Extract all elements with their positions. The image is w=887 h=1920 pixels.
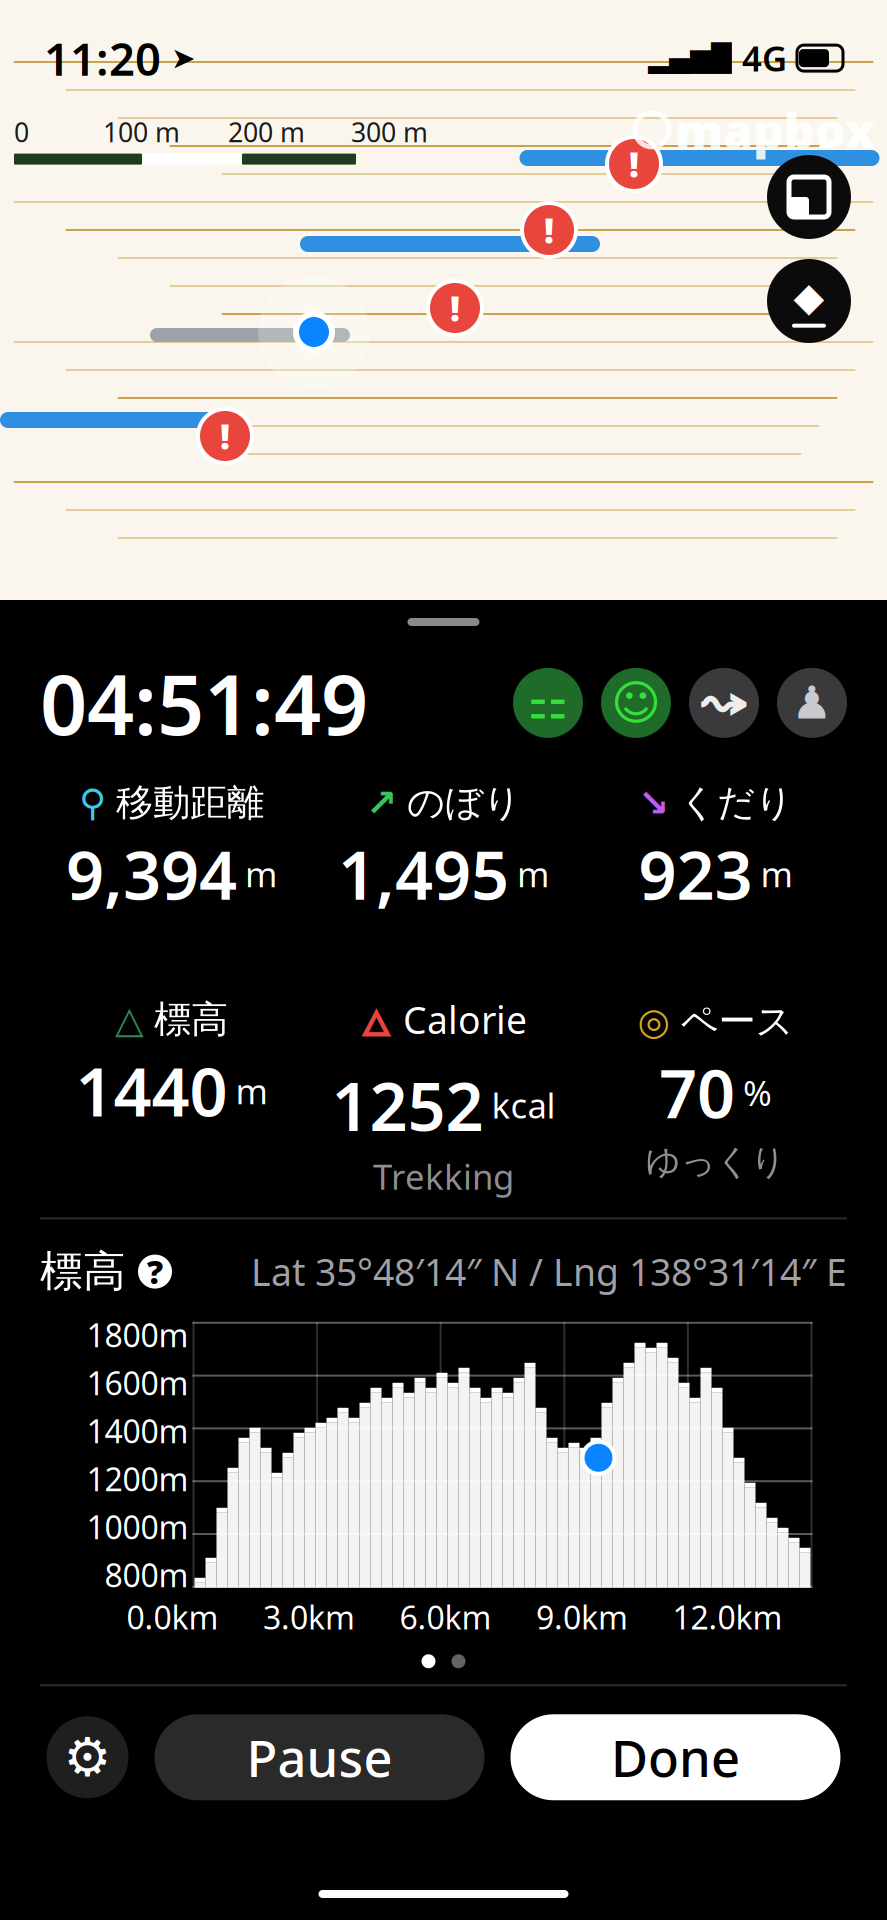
staticText: ➤ [171,41,196,75]
staticText: ! [629,141,639,187]
button[interactable]: Elevation help [138,1255,172,1289]
staticText: ペース [680,998,793,1044]
staticText: ? [147,1250,163,1293]
staticText: 300 m [351,114,428,150]
staticText: ⚙ [63,1727,111,1787]
staticText: のぼり [407,780,521,826]
staticText: ⤳ [697,682,750,723]
staticText: Pause [246,1724,392,1791]
staticText: 200 m [228,114,305,150]
staticText: 9.0km [536,1596,628,1638]
staticText: ◎ [637,1000,670,1042]
staticText: Done [611,1724,740,1791]
staticText: ゆっくり [645,1141,785,1183]
button[interactable]: Map layers [767,259,851,343]
staticText: ! [220,413,230,459]
staticText: m [760,851,792,897]
button[interactable]: Settings [46,1716,128,1798]
button[interactable]: Waypoints [513,668,583,738]
staticText: ⚲ [79,781,106,824]
staticText: m [235,1068,267,1114]
staticText: 100 m [103,114,180,150]
staticText: 11:20 [44,28,161,88]
staticText: mapbox [675,98,875,162]
staticText: 800m [104,1553,188,1596]
staticText: 標高 [154,997,228,1042]
staticText: 12.0km [672,1596,782,1638]
staticText: 3.0km [263,1596,355,1638]
staticText: 9,394 [66,830,237,918]
staticText: 🜂 [360,982,393,1057]
staticText: 移動距離 [116,780,264,826]
staticText: 6.0km [399,1596,491,1638]
button[interactable]: Pause [154,1714,484,1800]
staticText: 標高 [40,1245,126,1298]
staticText: 1400m [86,1409,188,1452]
staticText: ◆ [793,274,824,320]
button[interactable]: Post a note [601,668,671,738]
staticText: ↗ [366,781,397,824]
staticText: kcal [491,1082,555,1128]
staticText: % [743,1069,772,1115]
staticText: ⚏ [527,677,568,729]
staticText: 1000m [86,1505,188,1548]
staticText: △ [115,998,144,1041]
staticText: ▂▄▆█ [648,43,732,73]
staticText: 1252 [331,1061,483,1149]
staticText: 70 [659,1048,735,1137]
staticText: 0 [14,114,29,150]
staticText: 0.0km [126,1596,218,1638]
button[interactable]: Done [510,1714,840,1800]
staticText: くだり [679,780,793,826]
staticText: ♟ [791,677,832,729]
staticText: 1440 [75,1046,227,1135]
staticText: ↘ [638,781,669,824]
button[interactable]: Members [777,668,847,738]
staticText: 1200m [86,1457,188,1500]
staticText: Lat 35°48′14″ N / Lng 138°31′14″ E [251,1247,847,1296]
staticText: 923 [638,830,752,918]
staticText: 1800m [86,1313,188,1356]
staticText: m [245,851,277,897]
staticText: 1,495 [338,830,509,918]
staticText: ☺ [611,676,661,730]
staticText: ! [544,207,554,253]
staticText: Calorie [403,995,527,1044]
button[interactable]: Collapse map [767,155,851,239]
button[interactable]: Route deviation alert [689,668,759,738]
staticText: 4G [742,35,787,81]
staticText: m [517,851,549,897]
staticText: Trekking [373,1153,514,1199]
staticText: 04:51:49 [40,648,368,758]
staticText: 1600m [86,1361,188,1404]
staticText: ! [450,285,460,331]
